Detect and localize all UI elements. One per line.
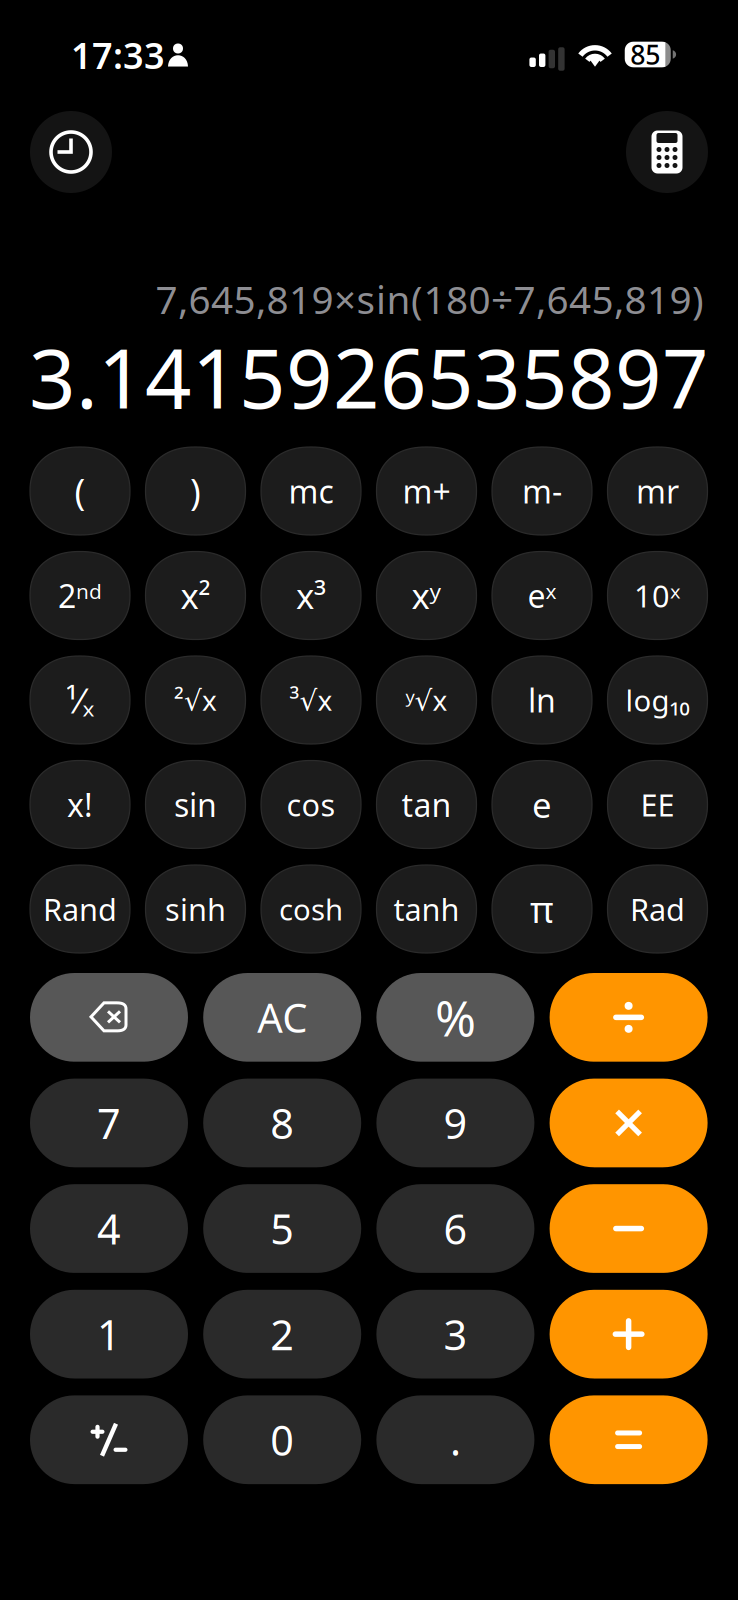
staticText: AC <box>257 991 307 1044</box>
staticText: 2ⁿᵈ <box>58 574 102 617</box>
staticText: xʸ <box>411 572 441 618</box>
button[interactable]: 8 <box>203 1079 361 1167</box>
button[interactable]: 9 <box>376 1079 534 1167</box>
button[interactable]: eˣ <box>492 551 592 639</box>
button[interactable]: ( <box>30 447 130 535</box>
button[interactable]: m- <box>492 447 592 535</box>
button[interactable]: Add <box>550 1290 708 1378</box>
button[interactable]: 0 <box>203 1395 361 1484</box>
staticText: log₁₀ <box>625 680 689 719</box>
button[interactable]: cos <box>261 760 361 848</box>
staticText: ln <box>528 679 556 721</box>
staticText: π <box>530 885 554 933</box>
staticText: ³√x <box>289 681 332 719</box>
staticText: x³ <box>296 572 326 618</box>
button[interactable]: 1 <box>30 1290 188 1378</box>
staticText: ʸ√x <box>405 681 447 719</box>
staticText: e <box>532 781 552 827</box>
staticText: sin <box>174 783 217 826</box>
button[interactable]: ʸ√x <box>376 656 476 744</box>
staticText: Rand <box>43 889 117 929</box>
staticText: mr <box>636 470 679 512</box>
button[interactable]: ln <box>492 656 592 744</box>
button[interactable]: 2 <box>203 1290 361 1378</box>
staticText: 5 <box>270 1201 294 1256</box>
staticText: 1 <box>97 1307 121 1362</box>
staticText: m+ <box>402 470 450 512</box>
button[interactable]: Toggle sign <box>30 1395 188 1484</box>
button[interactable]: m+ <box>376 447 476 535</box>
staticText: m- <box>522 470 562 512</box>
staticText: 2 <box>270 1307 294 1362</box>
button[interactable]: ³√x <box>261 656 361 744</box>
button[interactable]: 3 <box>376 1290 534 1378</box>
staticText: x² <box>180 572 210 618</box>
staticText: ( <box>74 467 85 515</box>
button[interactable]: % <box>376 973 534 1062</box>
button[interactable]: Rand <box>30 865 130 953</box>
staticText: 3.1415926535897 <box>29 323 709 431</box>
button[interactable]: tanh <box>376 865 476 953</box>
button[interactable]: 2ⁿᵈ <box>30 551 130 639</box>
staticText: 10ˣ <box>634 575 681 616</box>
staticText: cos <box>286 784 335 825</box>
button[interactable]: ²√x <box>145 656 245 744</box>
button[interactable]: sinh <box>145 865 245 953</box>
button[interactable]: cosh <box>261 865 361 953</box>
staticText: 4 <box>97 1201 121 1256</box>
button[interactable]: log₁₀ <box>607 656 707 744</box>
button[interactable]: Calculator <box>626 111 708 193</box>
staticText: 6 <box>443 1201 467 1256</box>
button[interactable]: Equals <box>550 1395 708 1484</box>
button[interactable]: 7 <box>30 1079 188 1167</box>
staticText: mc <box>288 470 333 512</box>
staticText: % <box>435 985 476 1050</box>
staticText: Rad <box>630 889 685 929</box>
staticText: x! <box>67 783 93 826</box>
button[interactable]: Multiply <box>550 1079 708 1167</box>
button[interactable]: 4 <box>30 1184 188 1273</box>
staticText: 3 <box>443 1307 467 1362</box>
button[interactable]: sin <box>145 760 245 848</box>
button[interactable]: Divide <box>550 973 708 1062</box>
staticText: cosh <box>279 889 343 928</box>
staticText: EE <box>640 784 674 825</box>
button[interactable]: x! <box>30 760 130 848</box>
button[interactable]: x³ <box>261 551 361 639</box>
button[interactable]: π <box>492 865 592 953</box>
staticText: ²√x <box>174 681 217 719</box>
staticText: tan <box>401 783 451 826</box>
button[interactable]: x² <box>145 551 245 639</box>
button[interactable]: ¹⁄ₓ <box>30 656 130 744</box>
staticText: 17:33 <box>71 31 165 79</box>
button[interactable]: ) <box>145 447 245 535</box>
staticText: 7 <box>97 1095 121 1150</box>
button[interactable]: 6 <box>376 1184 534 1273</box>
button[interactable]: 5 <box>203 1184 361 1273</box>
button[interactable]: History <box>30 111 112 193</box>
button[interactable]: Rad <box>607 865 707 953</box>
staticText: 0 <box>270 1412 294 1467</box>
staticText: sinh <box>165 889 226 929</box>
button[interactable]: EE <box>607 760 707 848</box>
staticText: ¹⁄ₓ <box>65 677 94 723</box>
button[interactable]: mr <box>607 447 707 535</box>
button[interactable]: mc <box>261 447 361 535</box>
button[interactable]: 10ˣ <box>607 551 707 639</box>
button[interactable]: Subtract <box>550 1184 708 1273</box>
staticText: 7,645,819×sin(180÷7,645,819) <box>155 273 704 325</box>
button[interactable]: e <box>492 760 592 848</box>
staticText: tanh <box>393 889 459 929</box>
button[interactable]: Delete <box>30 973 188 1062</box>
button[interactable]: xʸ <box>376 551 476 639</box>
button[interactable]: . <box>376 1395 534 1484</box>
staticText: ) <box>190 467 201 515</box>
staticText: eˣ <box>527 574 556 617</box>
button[interactable]: tan <box>376 760 476 848</box>
button[interactable]: AC <box>203 973 361 1062</box>
staticText: 9 <box>443 1095 467 1150</box>
staticText: . <box>450 1412 461 1467</box>
staticText: 8 <box>270 1095 294 1150</box>
staticText: 85 <box>630 37 660 72</box>
